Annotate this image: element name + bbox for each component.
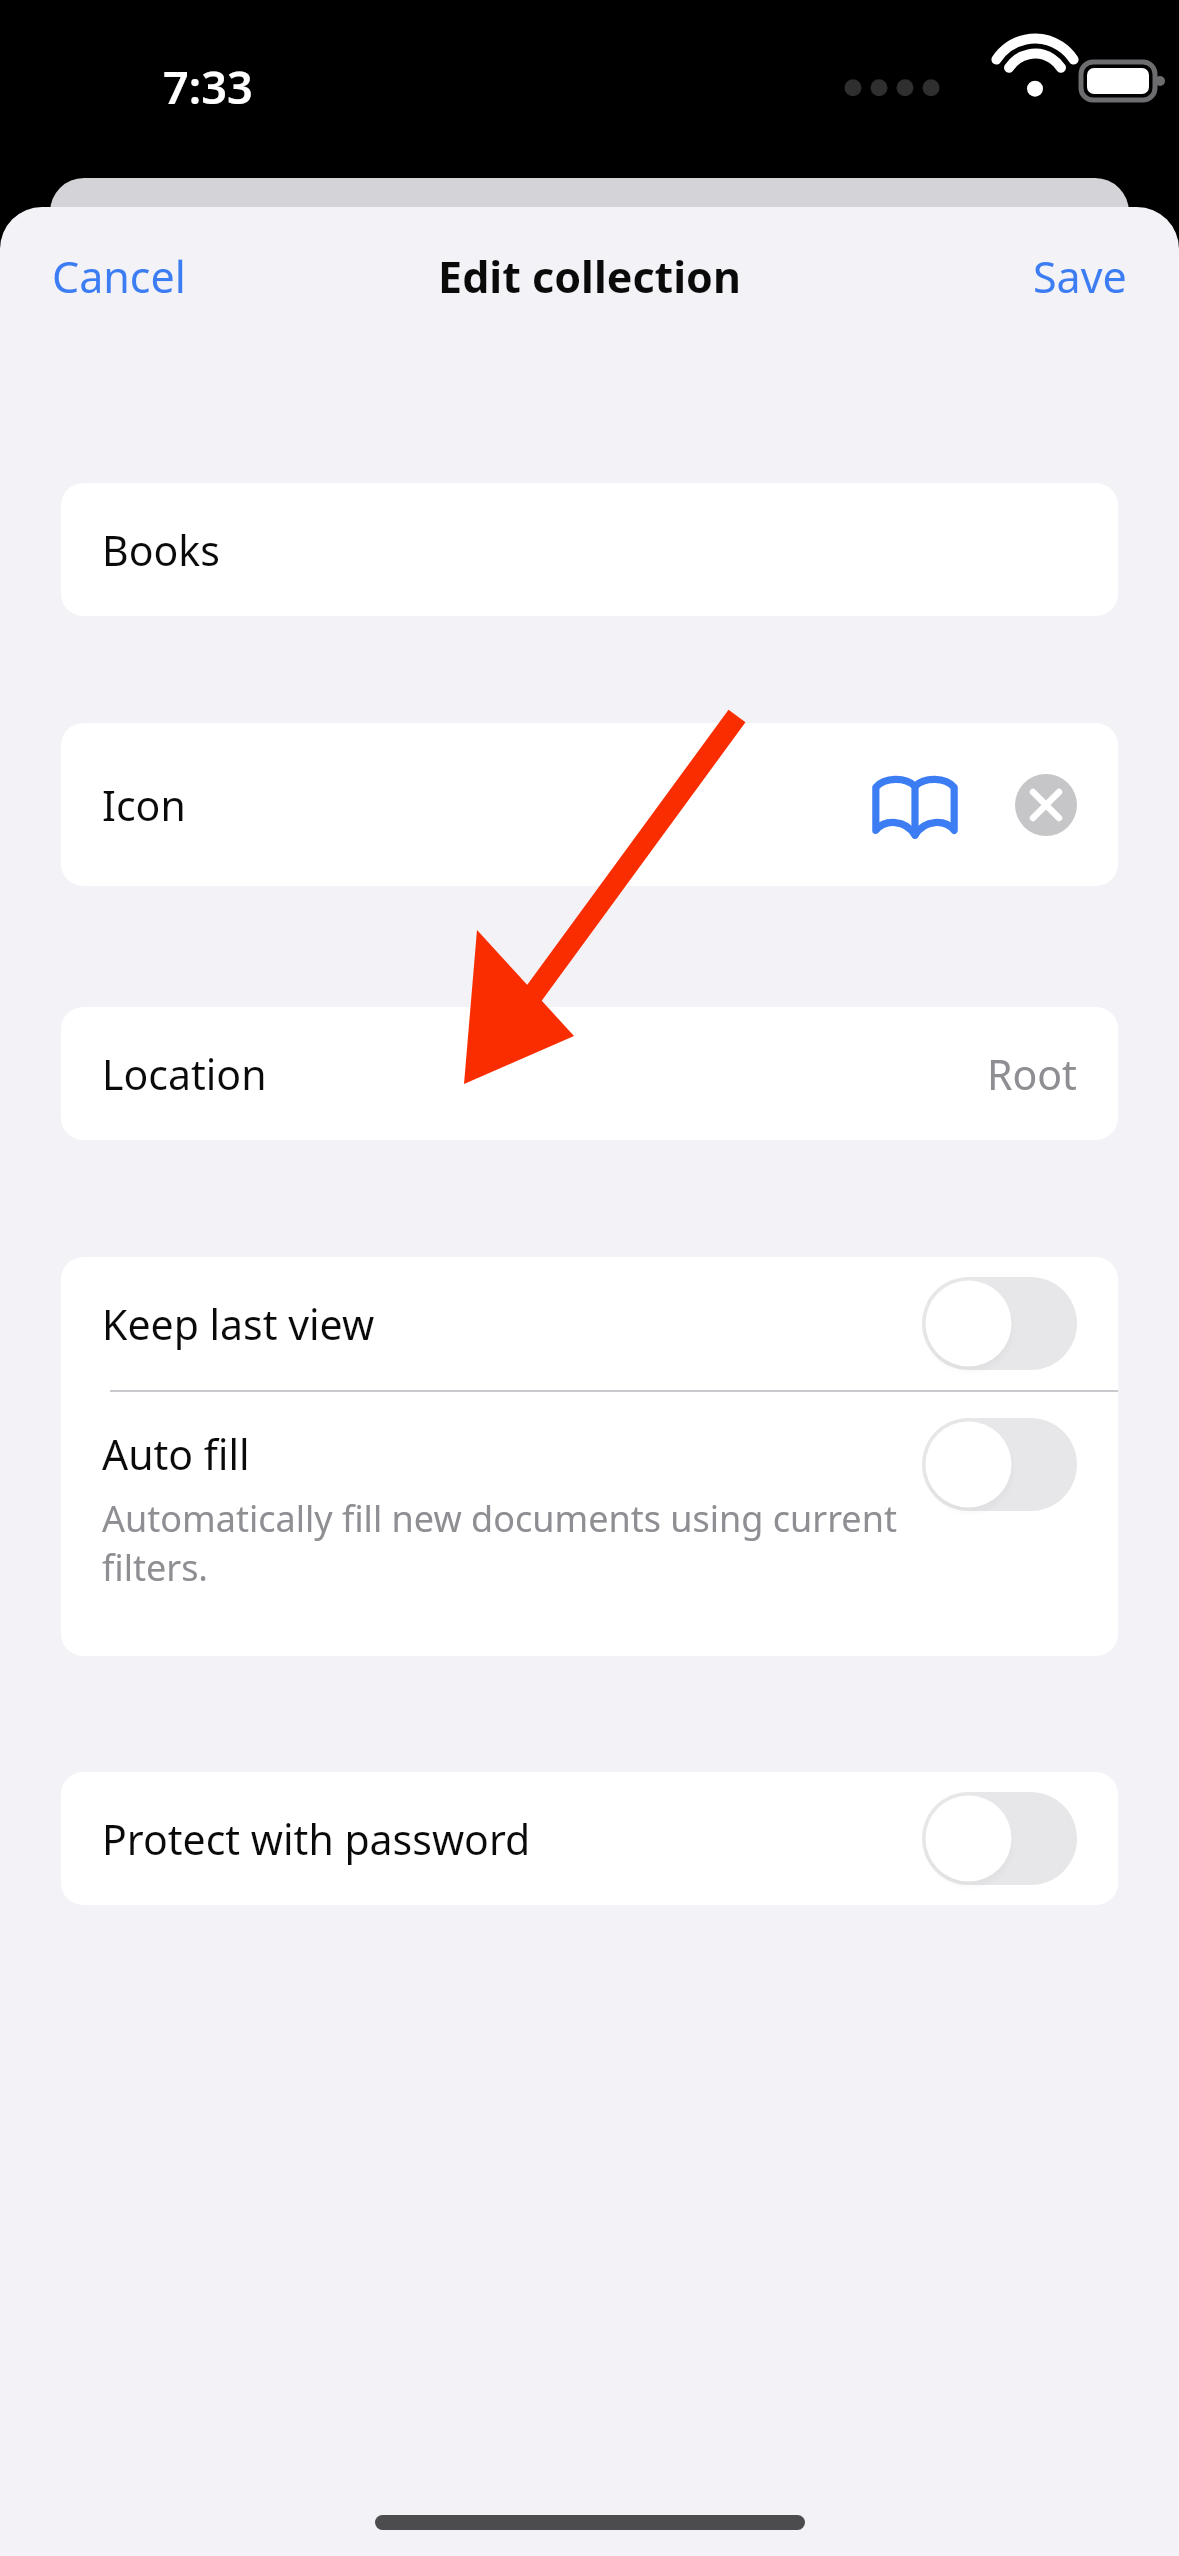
staticText: Protect with password <box>102 1811 531 1867</box>
button[interactable]: Protect with password toggle <box>922 1792 1077 1885</box>
button[interactable]: Books <box>61 483 1118 616</box>
button[interactable]: Location <box>61 1007 1118 1140</box>
staticText: Books <box>102 522 220 578</box>
staticText: Location <box>102 1046 267 1102</box>
staticText: Auto fill <box>102 1426 250 1482</box>
button[interactable]: Keep last view toggle <box>922 1277 1077 1370</box>
button[interactable]: Book icon <box>871 761 959 849</box>
button[interactable]: Auto fill <box>61 1392 1118 1656</box>
staticText: Edit collection <box>438 247 741 306</box>
staticText: 7:33 <box>163 56 253 117</box>
button[interactable]: Cancel <box>30 231 208 322</box>
button[interactable]: Save <box>1011 231 1149 322</box>
button[interactable]: Auto fill toggle <box>922 1418 1077 1511</box>
staticText: Icon <box>102 777 186 833</box>
staticText: Keep last view <box>102 1296 375 1352</box>
staticText: Automatically fill new documents using c… <box>102 1494 902 1591</box>
button[interactable]: Protect with password <box>61 1772 1118 1905</box>
button[interactable]: Clear icon <box>1015 774 1077 836</box>
staticText: Cancel <box>52 247 186 306</box>
staticText: Save <box>1033 247 1127 306</box>
staticText: Root <box>987 1046 1077 1102</box>
button[interactable]: Icon <box>61 723 1118 886</box>
button[interactable]: Keep last view <box>61 1257 1118 1390</box>
